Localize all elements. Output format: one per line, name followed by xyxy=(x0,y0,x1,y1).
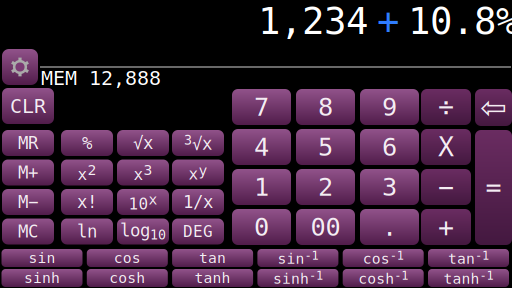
staticText: M− xyxy=(18,192,38,212)
button[interactable]: 4 xyxy=(232,129,291,165)
button[interactable]: cos xyxy=(87,249,168,267)
button[interactable]: 0 xyxy=(232,209,291,245)
button[interactable]: X xyxy=(421,129,471,165)
staticText: 2 xyxy=(318,173,333,201)
button[interactable]: 2 xyxy=(296,169,355,205)
staticText: 3 xyxy=(382,173,397,201)
staticText: 9 xyxy=(382,93,397,121)
button[interactable]: 7 xyxy=(232,89,291,125)
button[interactable]: sin-1 xyxy=(257,249,338,267)
button[interactable]: sinh xyxy=(1,269,82,287)
staticText: tan xyxy=(199,250,226,266)
button[interactable]: 3 xyxy=(360,169,419,205)
button[interactable]: Settings xyxy=(2,49,38,85)
staticText: log10 xyxy=(120,221,166,242)
staticText: sinh-1 xyxy=(273,269,323,287)
button[interactable]: MC xyxy=(2,218,54,244)
staticText: tanh xyxy=(195,270,231,286)
button[interactable]: DEG xyxy=(172,218,224,244)
button[interactable]: CLR xyxy=(2,88,54,124)
button[interactable]: 9 xyxy=(360,89,419,125)
staticText: 1 xyxy=(254,173,269,201)
staticText: − xyxy=(438,172,454,202)
staticText: 4 xyxy=(254,133,269,161)
button[interactable]: 8 xyxy=(296,89,355,125)
staticText: CLR xyxy=(10,95,46,117)
staticText: + xyxy=(438,212,454,242)
staticText: ÷ xyxy=(438,92,454,122)
staticText: sin xyxy=(28,250,55,266)
button[interactable]: tan xyxy=(172,249,253,267)
staticText: tan-1 xyxy=(448,249,489,267)
button[interactable]: 3√x xyxy=(172,130,224,156)
staticText: + xyxy=(377,0,399,42)
button[interactable]: MR xyxy=(2,130,54,156)
button[interactable]: − xyxy=(421,169,471,205)
staticText: x! xyxy=(77,192,97,212)
button[interactable]: x! xyxy=(61,189,113,215)
button[interactable]: Delete xyxy=(475,89,512,126)
staticText: 7 xyxy=(254,93,269,121)
staticText: x3 xyxy=(133,161,152,183)
button[interactable]: x3 xyxy=(117,159,169,185)
staticText: . xyxy=(382,213,397,241)
button[interactable]: 5 xyxy=(296,129,355,165)
button[interactable]: . xyxy=(360,209,419,245)
staticText: xy xyxy=(188,162,207,183)
button[interactable]: log10 xyxy=(117,218,169,244)
button[interactable]: 1 xyxy=(232,169,291,205)
button[interactable]: + xyxy=(421,209,471,245)
staticText: cos-1 xyxy=(363,249,404,267)
button[interactable]: M− xyxy=(2,189,54,215)
staticText: cosh-1 xyxy=(358,269,408,287)
button[interactable]: cos-1 xyxy=(343,249,424,267)
staticText: 6 xyxy=(382,133,397,161)
staticText: 10x xyxy=(128,191,157,213)
staticText: ln xyxy=(77,222,97,241)
staticText: 0 xyxy=(254,213,269,241)
button[interactable]: 1/x xyxy=(172,189,224,215)
button[interactable]: xy xyxy=(172,159,224,185)
button[interactable]: ln xyxy=(61,218,113,244)
button[interactable]: ÷ xyxy=(421,89,471,125)
staticText: cosh xyxy=(109,270,145,286)
staticText: MEM 12,888 xyxy=(41,67,161,89)
staticText: = xyxy=(485,172,501,203)
staticText: 5 xyxy=(318,133,333,161)
staticText: % xyxy=(82,133,92,153)
staticText: X xyxy=(438,132,454,162)
staticText: √x xyxy=(133,133,153,153)
button[interactable]: x2 xyxy=(61,159,113,185)
button[interactable]: = xyxy=(475,130,512,245)
button[interactable]: tanh xyxy=(172,269,253,287)
staticText: ⇦ xyxy=(480,89,507,126)
button[interactable]: % xyxy=(61,130,113,156)
staticText: 10.8% xyxy=(408,0,512,42)
staticText: 00 xyxy=(310,213,340,241)
button[interactable]: cosh-1 xyxy=(343,269,424,287)
staticText: MR xyxy=(18,133,38,153)
button[interactable]: M+ xyxy=(2,159,54,185)
staticText: sinh xyxy=(24,270,60,286)
button[interactable]: 6 xyxy=(360,129,419,165)
button[interactable]: 00 xyxy=(296,209,355,245)
button[interactable]: sinh-1 xyxy=(257,269,338,287)
staticText: 8 xyxy=(318,93,333,121)
staticText: 1,234 xyxy=(258,0,368,42)
staticText: M+ xyxy=(18,163,38,182)
staticText: x2 xyxy=(77,161,96,183)
button[interactable]: sin xyxy=(1,249,82,267)
button[interactable]: tanh-1 xyxy=(428,269,509,287)
button[interactable]: 10x xyxy=(117,189,169,215)
button[interactable]: √x xyxy=(117,130,169,156)
staticText: DEG xyxy=(183,222,213,241)
button[interactable]: cosh xyxy=(87,269,168,287)
staticText: 3√x xyxy=(184,132,212,153)
staticText: tanh-1 xyxy=(443,269,493,287)
button[interactable]: tan-1 xyxy=(428,249,509,267)
staticText: MC xyxy=(18,222,38,241)
staticText: 1/x xyxy=(183,192,213,212)
staticText: cos xyxy=(114,250,141,266)
staticText: sin-1 xyxy=(277,249,318,267)
